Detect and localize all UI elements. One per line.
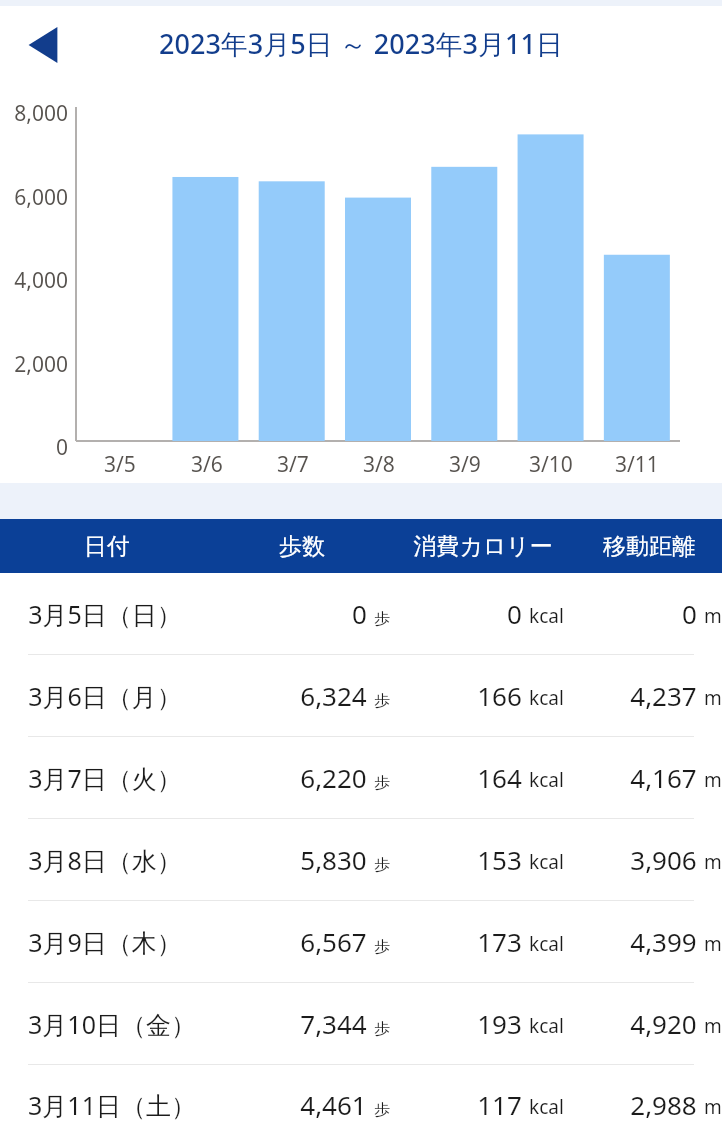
staticText: 3/11: [615, 450, 659, 479]
button[interactable]: 3月7日（火）: [0, 737, 722, 818]
staticText: 6,000: [14, 183, 68, 212]
button[interactable]: 3月10日（金）: [0, 983, 722, 1064]
staticText: m: [704, 931, 722, 957]
staticText: m: [704, 849, 722, 875]
staticText: m: [704, 603, 722, 629]
staticText: m: [704, 767, 722, 793]
staticText: 4,167: [630, 760, 697, 795]
staticText: 164: [477, 760, 522, 795]
button[interactable]: Back: [14, 16, 72, 74]
staticText: 3月7日（火）: [28, 761, 182, 795]
staticText: 3/6: [191, 450, 223, 479]
staticText: 歩: [374, 1100, 390, 1120]
staticText: 歩: [374, 937, 390, 957]
staticText: 0: [507, 596, 522, 631]
staticText: m: [704, 1013, 722, 1039]
staticText: 4,000: [14, 266, 68, 295]
staticText: 4,237: [630, 678, 697, 713]
staticText: m: [704, 685, 722, 711]
staticText: 3/9: [449, 450, 481, 479]
staticText: 3月8日（水）: [28, 843, 182, 877]
staticText: kcal: [529, 685, 564, 711]
staticText: 0: [682, 596, 697, 631]
staticText: 3月6日（月）: [28, 679, 182, 713]
staticText: 歩: [374, 609, 390, 629]
staticText: 3月10日（金）: [28, 1007, 196, 1041]
staticText: 4,461: [300, 1087, 367, 1122]
staticText: 2,988: [630, 1087, 697, 1122]
staticText: 4,920: [630, 1006, 697, 1041]
staticText: 3/7: [277, 450, 309, 479]
staticText: 歩数: [279, 532, 325, 561]
staticText: 消費カロリー: [413, 532, 553, 561]
staticText: 3/10: [529, 450, 573, 479]
staticText: 193: [477, 1006, 522, 1041]
staticText: 歩: [374, 855, 390, 875]
staticText: 3/8: [363, 450, 395, 479]
staticText: 3/5: [104, 450, 136, 479]
button[interactable]: 3月9日（木）: [0, 901, 722, 982]
staticText: 6,567: [300, 924, 367, 959]
staticText: kcal: [529, 1094, 564, 1120]
staticText: 166: [477, 678, 522, 713]
staticText: 日付: [84, 532, 130, 561]
staticText: 2,000: [14, 350, 68, 379]
staticText: 5,830: [300, 842, 367, 877]
staticText: 117: [477, 1087, 522, 1122]
staticText: 0: [55, 433, 68, 462]
staticText: 3,906: [630, 842, 697, 877]
staticText: kcal: [529, 767, 564, 793]
staticText: kcal: [529, 849, 564, 875]
staticText: 3月11日（土）: [28, 1088, 196, 1122]
staticText: 7,344: [300, 1006, 367, 1041]
staticText: 歩: [374, 691, 390, 711]
staticText: 8,000: [14, 99, 68, 128]
button[interactable]: 3月8日（水）: [0, 819, 722, 900]
staticText: 173: [477, 924, 522, 959]
staticText: 歩: [374, 1019, 390, 1039]
button[interactable]: 3月5日（日）: [0, 573, 722, 654]
staticText: 153: [477, 842, 522, 877]
staticText: 6,324: [300, 678, 367, 713]
button[interactable]: 3月11日（土）: [0, 1065, 722, 1144]
staticText: 歩: [374, 773, 390, 793]
staticText: 6,220: [300, 760, 367, 795]
staticText: kcal: [529, 603, 564, 629]
staticText: 0: [352, 596, 367, 631]
staticText: kcal: [529, 1013, 564, 1039]
staticText: 3月9日（木）: [28, 925, 182, 959]
staticText: 4,399: [630, 924, 697, 959]
staticText: kcal: [529, 931, 564, 957]
staticText: m: [704, 1094, 722, 1120]
button[interactable]: 3月6日（月）: [0, 655, 722, 736]
staticText: 2023年3月5日 ～ 2023年3月11日: [159, 25, 563, 62]
staticText: 移動距離: [603, 532, 695, 561]
staticText: 3月5日（日）: [28, 597, 182, 631]
